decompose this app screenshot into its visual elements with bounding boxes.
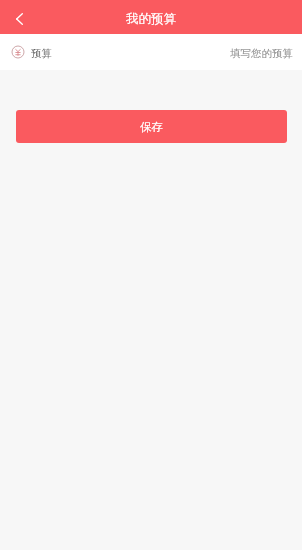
- staticText: 我的预算: [126, 11, 176, 27]
- button[interactable]: Back: [0, 0, 40, 34]
- button[interactable]: 预算: [0, 34, 302, 70]
- staticText: 预算: [31, 47, 52, 60]
- button[interactable]: 保存: [16, 110, 287, 143]
- staticText: 填写您的预算: [230, 47, 293, 60]
- staticText: 保存: [140, 120, 163, 134]
